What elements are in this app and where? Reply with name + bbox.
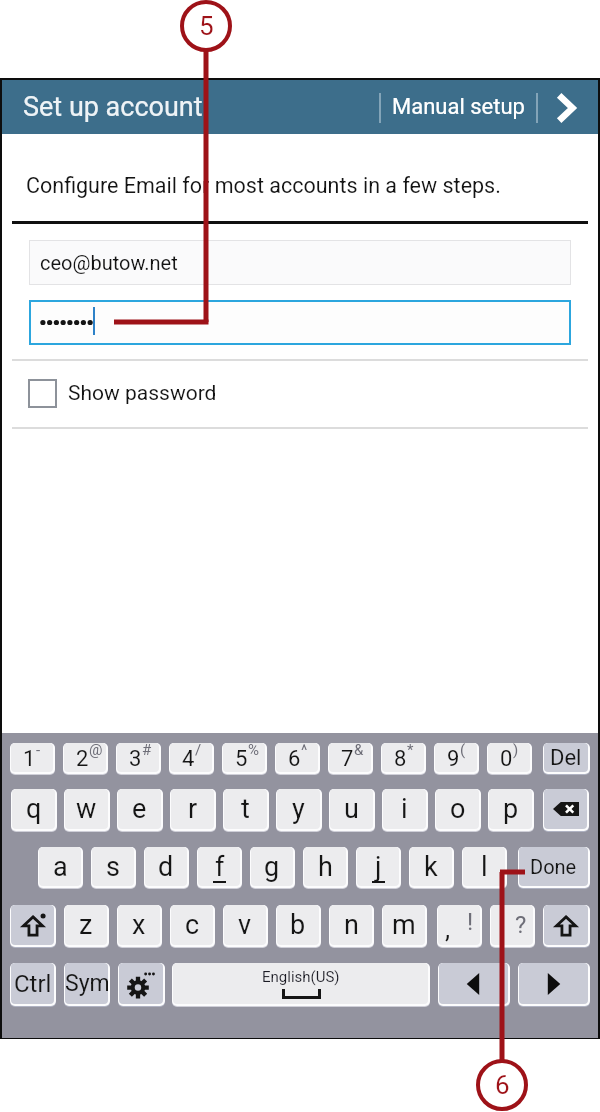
staticText: Configure Email for most accounts in a f… (26, 173, 501, 198)
button[interactable]: b (276, 905, 321, 948)
staticText: Set up account (23, 91, 203, 123)
staticText: l (481, 851, 488, 883)
button[interactable]: k (409, 847, 454, 889)
staticText: Del (550, 745, 582, 771)
staticText: ? (515, 911, 527, 939)
staticText: * (407, 743, 414, 759)
button[interactable]: Manual setup (382, 82, 534, 132)
staticText: g (264, 851, 280, 883)
staticText: j (375, 851, 382, 883)
button[interactable]: Del (543, 743, 590, 775)
button[interactable]: e (117, 789, 163, 832)
staticText: 5 (199, 11, 214, 41)
button[interactable]: p (488, 789, 534, 832)
staticText: ) (513, 743, 519, 759)
staticText: q (26, 793, 42, 825)
button[interactable]: 9 (434, 743, 479, 775)
staticText: a (53, 851, 68, 883)
button[interactable]: , (437, 905, 482, 948)
staticText: Ctrl (14, 970, 52, 998)
button[interactable]: 6 (275, 743, 320, 775)
staticText: c (185, 909, 200, 941)
button[interactable]: g (250, 847, 295, 889)
staticText: Show password (68, 381, 217, 406)
button[interactable]: v (223, 905, 268, 948)
button[interactable]: q (11, 789, 57, 832)
staticText: ( (460, 743, 466, 759)
button[interactable]: 2 (63, 743, 108, 775)
button[interactable]: Move right (518, 963, 590, 1007)
button[interactable]: 3 (116, 743, 161, 775)
button[interactable]: h (303, 847, 348, 889)
staticText: u (344, 793, 359, 825)
staticText: i (401, 793, 408, 825)
button[interactable]: a (38, 847, 83, 889)
button[interactable]: n (329, 905, 374, 948)
button[interactable]: Settings (118, 963, 165, 1007)
button[interactable]: Done (518, 847, 590, 889)
button[interactable]: y (276, 789, 322, 832)
button[interactable]: t (223, 789, 269, 832)
staticText: k (424, 851, 438, 883)
button[interactable]: Show password (12, 359, 588, 427)
staticText: r (188, 793, 198, 825)
button[interactable]: f (197, 847, 242, 889)
button[interactable]: Shift (10, 905, 56, 948)
button[interactable]: s (91, 847, 136, 889)
button[interactable]: l (462, 847, 507, 889)
button[interactable]: z (64, 905, 109, 948)
button[interactable]: Sym (64, 963, 110, 1007)
button[interactable]: x (117, 905, 162, 948)
button[interactable]: Shift (543, 905, 590, 948)
button[interactable]: 4 (169, 743, 214, 775)
staticText: , (445, 914, 451, 944)
button[interactable]: m (382, 905, 427, 948)
button[interactable]: d (144, 847, 189, 889)
staticText: z (79, 909, 93, 941)
staticText: # (142, 743, 152, 759)
staticText: e (132, 793, 147, 825)
button[interactable]: 8 (381, 743, 426, 775)
button[interactable]: Ctrl (10, 963, 56, 1007)
staticText: - (36, 743, 41, 759)
staticText: b (290, 909, 306, 941)
staticText: 6 (495, 1070, 510, 1100)
button[interactable]: 7 (328, 743, 373, 775)
button[interactable]: Space (172, 963, 430, 1007)
button[interactable]: 1 (10, 743, 55, 775)
button[interactable]: r (170, 789, 216, 832)
staticText: 6 (288, 746, 301, 772)
button[interactable]: i (382, 789, 428, 832)
staticText: y (292, 793, 305, 825)
button[interactable]: w (64, 789, 110, 832)
button[interactable]: Backspace (543, 789, 589, 832)
staticText: 7 (341, 746, 354, 772)
staticText: f (215, 851, 225, 883)
staticText: ! (467, 908, 474, 936)
staticText: & (354, 743, 364, 759)
button[interactable]: j (356, 847, 401, 889)
staticText: @ (89, 743, 103, 759)
button[interactable]: ? (490, 905, 535, 948)
staticText: ^ (301, 743, 308, 759)
staticText: d (158, 851, 174, 883)
button[interactable]: o (435, 789, 481, 832)
staticText: 4 (182, 746, 195, 772)
staticText: 2 (76, 746, 89, 772)
button[interactable]: 0 (487, 743, 532, 775)
staticText: 3 (129, 746, 142, 772)
staticText: Done (530, 855, 577, 878)
staticText: 5 (235, 746, 248, 772)
button[interactable]: u (329, 789, 375, 832)
staticText: s (106, 851, 120, 883)
button[interactable]: ceo@butow.net (29, 240, 571, 285)
button[interactable]: c (170, 905, 215, 948)
staticText: w (76, 793, 97, 825)
button[interactable] (29, 300, 571, 345)
button[interactable]: 5 (222, 743, 267, 775)
staticText: h (318, 851, 333, 883)
button[interactable]: Next (543, 82, 593, 132)
button[interactable]: Move left (438, 963, 510, 1007)
staticText: 8 (394, 746, 407, 772)
staticText: x (132, 909, 146, 941)
